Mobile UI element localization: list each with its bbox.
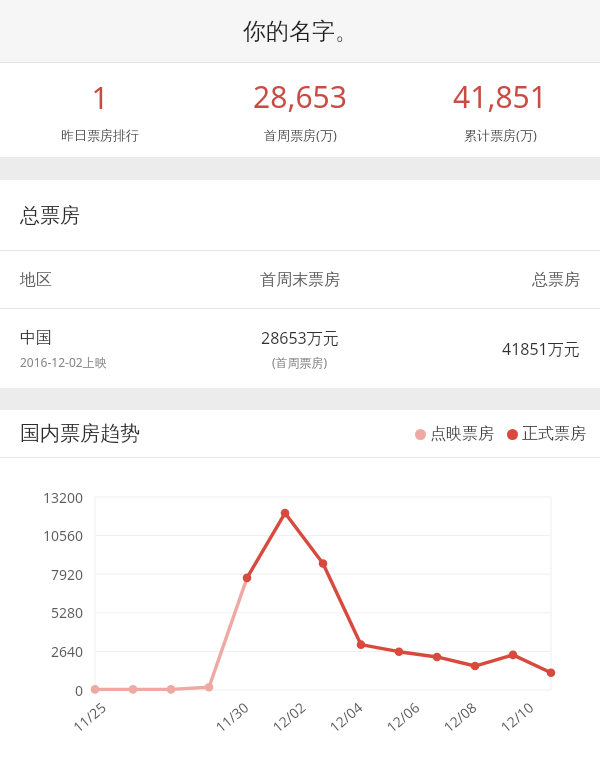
button[interactable]: 正式票房 <box>507 424 586 444</box>
button[interactable]: 41,851 <box>400 63 600 157</box>
button[interactable]: 你的名字。 <box>0 0 600 62</box>
button[interactable]: 1 <box>0 63 200 157</box>
staticText: (首周票房) <box>272 354 328 370</box>
staticText: 1 <box>91 77 109 118</box>
staticText: 正式票房 <box>522 424 586 444</box>
staticText: 28653万元 <box>261 327 339 349</box>
staticText: 你的名字。 <box>243 17 358 46</box>
staticText: 中国 <box>20 328 52 348</box>
staticText: 总票房 <box>20 203 80 228</box>
staticText: 点映票房 <box>430 424 494 444</box>
staticText: 41,851 <box>453 76 547 117</box>
staticText: 昨日票房排行 <box>61 127 139 143</box>
staticText: 累计票房(万) <box>464 126 537 144</box>
button[interactable]: 中国 <box>0 309 600 388</box>
staticText: 国内票房趋势 <box>20 421 140 446</box>
staticText: 首周末票房 <box>260 270 340 290</box>
staticText: 总票房 <box>532 270 580 290</box>
staticText: 首周票房(万) <box>264 126 337 144</box>
staticText: 地区 <box>20 270 52 290</box>
button[interactable]: 点映票房 <box>415 424 494 444</box>
staticText: 2016-12-02上映 <box>20 354 107 370</box>
staticText: 28,653 <box>253 76 347 117</box>
staticText: 41851万元 <box>502 338 580 360</box>
button[interactable]: 28,653 <box>200 63 400 157</box>
